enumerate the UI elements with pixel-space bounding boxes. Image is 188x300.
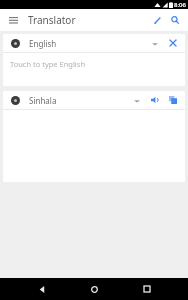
staticText: Translator [28, 13, 76, 27]
staticText: Sinhala [29, 95, 57, 106]
button[interactable]: Home [83, 278, 105, 300]
staticText: 8:06 [174, 1, 186, 9]
staticText: English [29, 38, 57, 49]
button[interactable]: Touch to type English [3, 53, 185, 86]
button[interactable]: Back [31, 278, 53, 300]
button[interactable]: Open navigation menu [6, 13, 20, 27]
button[interactable]: Listen [148, 93, 162, 107]
staticText: Touch to type English [10, 59, 86, 69]
button[interactable]: Search [168, 13, 182, 27]
button[interactable]: Copy translation [166, 93, 180, 107]
button[interactable]: Clear text [166, 36, 180, 50]
button[interactable]: Recent apps [136, 278, 158, 300]
button[interactable]: Language settings [8, 36, 22, 50]
button[interactable]: Handwriting input [150, 13, 164, 27]
button[interactable]: English [29, 38, 166, 49]
button[interactable]: Language settings [8, 93, 22, 107]
button[interactable]: Sinhala [29, 95, 148, 106]
